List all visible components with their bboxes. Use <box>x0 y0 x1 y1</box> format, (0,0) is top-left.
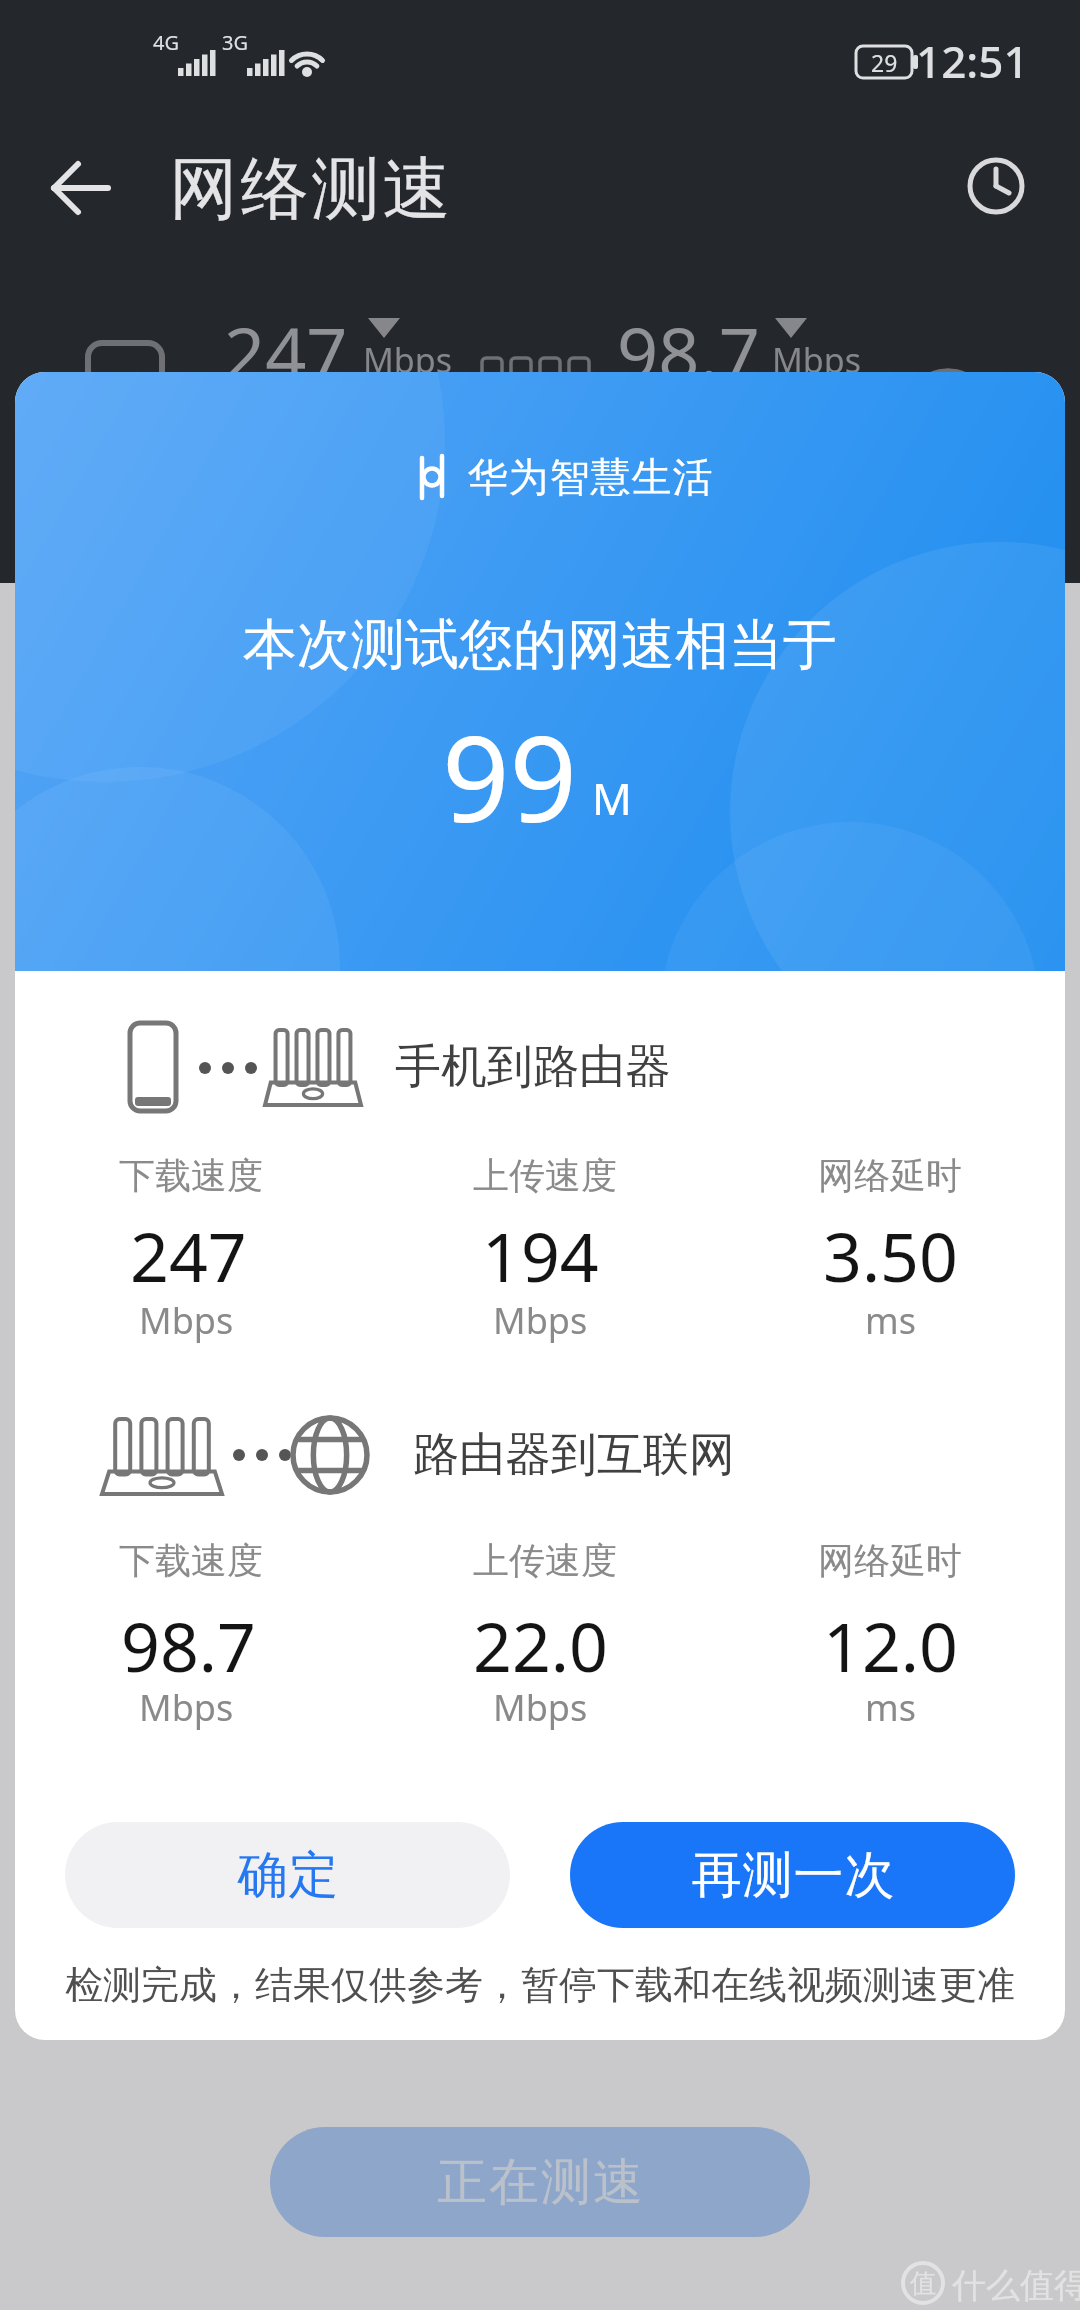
staticText: 网络测速 <box>168 147 452 233</box>
staticText: 上传速度 <box>473 1153 617 1198</box>
staticText: 3G <box>222 29 248 56</box>
staticText: 手机到路由器 <box>395 1038 671 1096</box>
staticText: Mbps <box>772 337 861 383</box>
staticText: 3.50 <box>823 1209 958 1302</box>
staticText: 247 <box>224 303 348 401</box>
staticText: 上传速度 <box>473 1538 617 1583</box>
staticText: 下载速度 <box>119 1538 263 1583</box>
staticText: Mbps <box>139 1683 234 1732</box>
staticText: 下载速度 <box>119 1153 263 1198</box>
staticText: 98.7 <box>617 303 760 401</box>
staticText: 确定 <box>237 1844 339 1907</box>
staticText: 再测一次 <box>691 1844 895 1907</box>
staticText: 99 <box>442 696 577 857</box>
staticText: 值 <box>910 2267 936 2300</box>
staticText: 4G <box>153 29 179 56</box>
staticText: 22.0 <box>473 1599 608 1692</box>
staticText: ms <box>865 1296 916 1345</box>
staticText: M <box>592 768 632 828</box>
staticText: 194 <box>482 1209 599 1302</box>
staticText: 网络延时 <box>818 1153 962 1198</box>
staticText: ms <box>865 1683 916 1732</box>
staticText: 正在测速 <box>436 2151 644 2214</box>
staticText: 12.0 <box>823 1599 958 1692</box>
staticText: Mbps <box>363 337 452 383</box>
staticText: 网络延时 <box>818 1538 962 1583</box>
staticText: 什么值得买 <box>952 2264 1080 2307</box>
staticText: 路由器到互联网 <box>413 1426 735 1484</box>
staticText: 12:51 <box>916 31 1029 91</box>
staticText: 29 <box>871 47 898 78</box>
staticText: 华为智慧生活 <box>467 452 713 502</box>
staticText: 247 <box>130 1209 247 1302</box>
staticText: 本次测试您的网速相当于 <box>243 611 837 679</box>
staticText: Mbps <box>139 1296 234 1345</box>
staticText: 98.7 <box>121 1599 256 1692</box>
staticText: 检测完成，结果仅供参考，暂停下载和在线视频测速更准 <box>65 1961 1015 2009</box>
staticText: Mbps <box>493 1296 588 1345</box>
staticText: Mbps <box>493 1683 588 1732</box>
